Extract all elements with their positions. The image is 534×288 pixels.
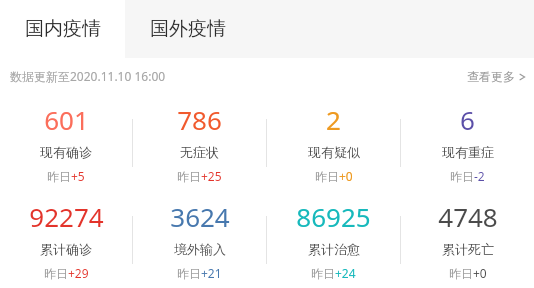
staticText: 昨日 <box>315 169 339 184</box>
staticText: 累计治愈 <box>308 241 360 257</box>
staticText: 数据更新至2020.11.10 16:00 <box>10 68 166 84</box>
staticText: 昨日 <box>177 266 201 281</box>
staticText: 昨日 <box>449 266 473 281</box>
staticText: +29 <box>68 265 89 281</box>
staticText: 786 <box>177 102 222 137</box>
staticText: 昨日 <box>44 266 68 281</box>
staticText: 昨日 <box>47 169 71 184</box>
staticText: 昨日 <box>311 266 335 281</box>
staticText: 3624 <box>170 199 230 234</box>
button[interactable]: 4748 <box>401 199 534 281</box>
staticText: 国内疫情 <box>25 17 101 41</box>
staticText: 现有重症 <box>442 144 494 160</box>
staticText: 4748 <box>438 199 498 234</box>
button[interactable]: 国外疫情 <box>125 0 250 58</box>
staticText: 86925 <box>296 199 371 234</box>
button[interactable]: 601 <box>0 102 132 184</box>
staticText: 无症状 <box>180 144 219 160</box>
staticText: 现有疑似 <box>308 144 360 160</box>
staticText: 昨日 <box>450 169 474 184</box>
staticText: 累计确诊 <box>40 241 92 257</box>
staticText: +0 <box>473 265 487 281</box>
staticText: +0 <box>339 168 353 184</box>
staticText: 查看更多 <box>467 69 515 84</box>
button[interactable]: 查看更多 <box>467 69 526 84</box>
staticText: +25 <box>201 168 222 184</box>
button[interactable]: 6 <box>401 102 534 184</box>
staticText: +5 <box>71 168 85 184</box>
button[interactable]: 92274 <box>0 199 132 281</box>
staticText: 昨日 <box>177 169 201 184</box>
staticText: +24 <box>335 265 356 281</box>
staticText: -2 <box>474 168 485 184</box>
button[interactable]: 786 <box>133 102 266 184</box>
button[interactable]: 86925 <box>267 199 400 281</box>
staticText: 境外输入 <box>174 241 226 257</box>
staticText: 6 <box>460 102 475 137</box>
staticText: +21 <box>201 265 222 281</box>
staticText: 601 <box>44 102 89 137</box>
staticText: 现有确诊 <box>40 144 92 160</box>
staticText: 国外疫情 <box>150 17 226 41</box>
button[interactable]: 2 <box>267 102 400 184</box>
button[interactable]: 3624 <box>133 199 266 281</box>
staticText: 2 <box>326 102 341 137</box>
staticText: 累计死亡 <box>442 241 494 257</box>
staticText: 92274 <box>29 199 104 234</box>
button[interactable]: 国内疫情 <box>0 0 125 58</box>
